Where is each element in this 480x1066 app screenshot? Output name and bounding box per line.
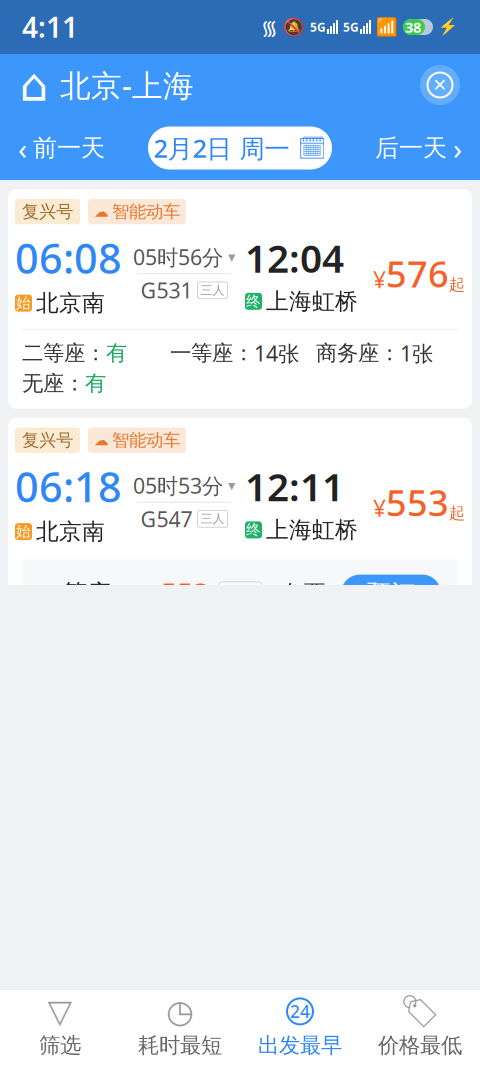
button[interactable]: Close <box>416 61 464 109</box>
staticText: 始 <box>16 294 31 312</box>
staticText: 5G <box>310 19 326 35</box>
staticText: 06:18 <box>15 459 122 514</box>
staticText: 有票 <box>280 580 326 607</box>
staticText: 三人 <box>200 511 224 526</box>
staticText: 终 <box>246 1030 261 1048</box>
staticText: 起 <box>449 275 465 295</box>
button[interactable]: 🏷 <box>360 990 480 1066</box>
staticText: ⌂ <box>19 59 48 111</box>
staticText: 复兴号 <box>22 430 73 451</box>
staticText: 上海虹桥 <box>266 287 358 315</box>
button[interactable]: 后一天 <box>363 126 474 170</box>
staticText: ▾ <box>228 477 235 494</box>
staticText: 价格最低 <box>378 1032 462 1059</box>
staticText: 2月2日 周一 <box>153 131 289 165</box>
staticText: 出发最早 <box>258 1032 342 1059</box>
button[interactable]: Home <box>14 65 54 105</box>
staticText: 始 <box>16 523 31 541</box>
staticText: 北京-上海 <box>60 65 194 105</box>
staticText: 04时54分 <box>133 980 223 1009</box>
staticText: 智能动车 <box>112 201 180 222</box>
staticText: 38 <box>405 17 421 37</box>
staticText: › <box>453 128 462 167</box>
button[interactable]: 预订 <box>341 575 441 613</box>
staticText: 06:30 <box>15 968 122 1023</box>
staticText: 北京南 <box>36 518 105 545</box>
staticText: 复兴号 <box>22 201 73 222</box>
button[interactable]: ‹ <box>6 126 117 170</box>
staticText: 上海虹桥 <box>266 1025 358 1053</box>
staticText: 筛选 <box>39 1032 81 1059</box>
staticText: 553 <box>386 478 449 526</box>
staticText: ‹ <box>18 128 27 167</box>
staticText: ✕ <box>432 75 447 95</box>
staticText: ☁ <box>94 432 109 448</box>
button[interactable]: 复兴号 <box>8 927 472 1066</box>
staticText: 有 <box>85 370 106 396</box>
staticText: ᯾ <box>261 14 278 40</box>
staticText: 05时56分 <box>133 243 223 271</box>
button[interactable]: 复兴号 <box>8 189 472 409</box>
staticText: 北京南 <box>36 289 105 317</box>
staticText: 5G <box>343 19 359 35</box>
staticText: 后一天 <box>375 133 447 163</box>
staticText: 24 <box>290 1000 310 1023</box>
staticText: 三人 <box>188 1020 212 1035</box>
staticText: 前一天 <box>33 133 105 163</box>
staticText: 553 <box>161 575 209 612</box>
staticText: 4:11 <box>22 8 78 46</box>
staticText: 北京南 <box>36 1027 105 1055</box>
staticText: 一等座： <box>170 340 254 366</box>
staticText: 🏷 <box>399 993 440 1030</box>
staticText: ▾ <box>228 986 235 1003</box>
button[interactable]: 2月2日 周一 <box>148 126 332 169</box>
button[interactable]: 复兴号 <box>8 418 472 560</box>
staticText: ¥ <box>373 264 386 295</box>
staticText: ⚡ <box>438 18 458 36</box>
staticText: ▾ <box>228 249 235 265</box>
staticText: 终 <box>246 521 261 539</box>
button[interactable]: 24 <box>240 990 360 1066</box>
staticText: 🔕 <box>283 17 305 37</box>
staticText: 耗时最短 <box>138 1032 222 1059</box>
button[interactable]: ▽ <box>0 990 120 1066</box>
staticText: 06:08 <box>15 230 122 285</box>
button[interactable]: ◷ <box>120 990 240 1066</box>
staticText: 商务座： <box>316 340 400 366</box>
staticText: 11:24 <box>245 970 344 1021</box>
staticText: 🗓 <box>297 135 326 161</box>
staticText: ☁ <box>94 203 109 220</box>
staticText: ¥ <box>373 493 386 523</box>
